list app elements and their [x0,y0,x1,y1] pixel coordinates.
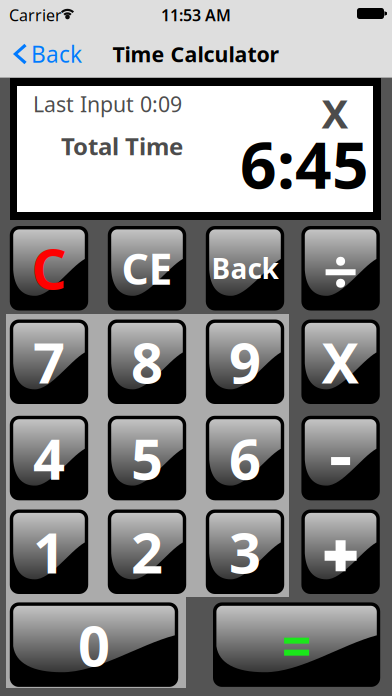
button[interactable]: Minus [301,416,380,500]
staticText: 2 [131,515,163,589]
staticText: 4 [33,421,65,495]
staticText: X [321,86,348,139]
button[interactable]: 4 [10,416,88,500]
button[interactable]: 1 [10,509,88,594]
staticText: C [31,232,66,305]
button[interactable]: 3 [206,509,284,594]
button[interactable]: 7 [10,319,88,404]
staticText: 9 [229,325,261,399]
button[interactable]: 0 [10,602,178,687]
staticText: 5 [131,421,163,495]
button[interactable]: Back [0,30,88,78]
staticText: CE [121,240,172,297]
button[interactable]: Equals [213,602,380,687]
staticText: 6:45 [240,121,369,206]
staticText: 6 [229,421,261,495]
staticText: X [322,325,360,399]
staticText: 1 [33,515,65,589]
staticText: Carrier [9,4,62,26]
button[interactable]: Plus [301,509,380,594]
staticText: 7 [33,325,65,399]
button[interactable]: 9 [206,319,284,404]
staticText: Total Time [61,130,183,162]
button[interactable]: Backspace [206,226,284,310]
button[interactable]: 6 [206,416,284,500]
button[interactable]: 8 [108,319,186,404]
staticText: 3 [229,515,261,589]
staticText: Back [211,250,278,287]
staticText: 0 [78,607,110,682]
button[interactable]: 2 [108,509,186,594]
staticText: Time Calculator [112,40,279,68]
button[interactable]: 5 [108,416,186,500]
staticText: 11:53 AM [161,4,231,26]
staticText: Back [31,39,82,69]
button[interactable]: Multiply [301,319,380,404]
button[interactable]: Clear entry [108,226,186,310]
button[interactable]: Clear [10,226,88,310]
staticText: Last Input 0:09 [33,90,182,118]
button[interactable]: Divide [301,226,380,310]
staticText: 8 [131,325,163,399]
